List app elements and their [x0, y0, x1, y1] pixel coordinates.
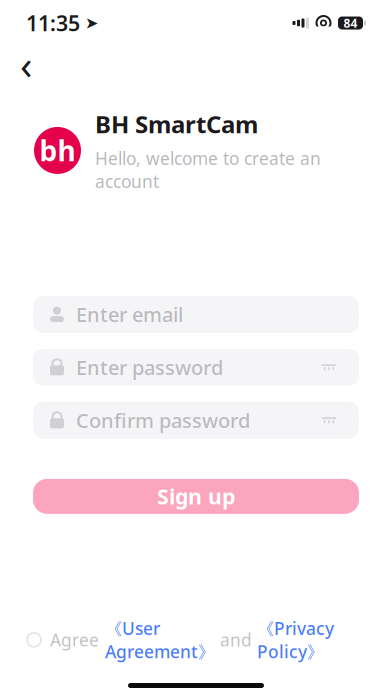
- staticText: Sign up: [157, 482, 235, 510]
- staticText: Enter email: [76, 301, 183, 328]
- staticText: 《User Agreement》: [105, 617, 215, 663]
- staticText: Hello, welcome to create an account: [95, 147, 321, 193]
- staticText: and: [220, 628, 252, 651]
- button[interactable]: Back: [4, 44, 48, 84]
- staticText: Agree: [50, 628, 99, 651]
- staticText: 84: [343, 15, 357, 31]
- button[interactable]: Show password: [315, 353, 343, 381]
- button[interactable]: Sign up: [33, 479, 359, 514]
- button[interactable]: 《User Agreement》: [105, 617, 215, 663]
- staticText: Confirm password: [76, 407, 250, 434]
- button[interactable]: Agree: [27, 628, 99, 651]
- staticText: ➤: [85, 14, 98, 32]
- button[interactable]: Show password: [315, 406, 343, 434]
- button[interactable]: 《Privacy Policy》: [257, 617, 334, 663]
- staticText: bh: [39, 132, 75, 169]
- staticText: BH SmartCam: [95, 108, 258, 140]
- staticText: 《Privacy Policy》: [257, 617, 334, 663]
- staticText: ‹: [20, 37, 32, 90]
- staticText: Enter password: [76, 354, 223, 381]
- staticText: 11:35: [26, 9, 80, 37]
